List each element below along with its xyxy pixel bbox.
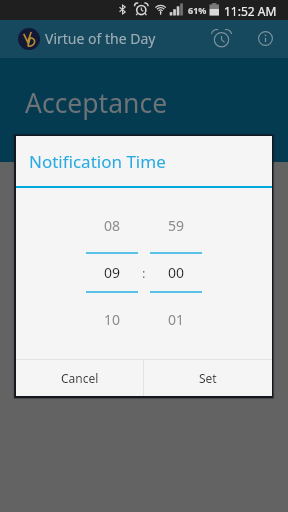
staticText: 59 xyxy=(150,216,202,235)
staticText: Set xyxy=(199,370,217,386)
staticText: : xyxy=(142,264,146,282)
staticText: 01 xyxy=(150,310,202,329)
staticText: 61% xyxy=(188,4,207,16)
staticText: 08 xyxy=(86,216,138,235)
staticText: Acceptance xyxy=(25,85,168,121)
staticText: Notification Time xyxy=(29,150,166,173)
button[interactable]: Cancel xyxy=(16,360,143,396)
button[interactable]: Info xyxy=(253,26,277,50)
staticText: Virtue of the Day xyxy=(45,29,156,48)
staticText: Cancel xyxy=(61,370,99,386)
staticText: 10 xyxy=(86,310,138,329)
button[interactable]: Set xyxy=(144,360,272,396)
staticText: 09 xyxy=(86,263,138,282)
staticText: 11:52 AM xyxy=(224,3,277,19)
staticText: 00 xyxy=(150,263,202,282)
button[interactable]: Notification time xyxy=(209,26,233,50)
